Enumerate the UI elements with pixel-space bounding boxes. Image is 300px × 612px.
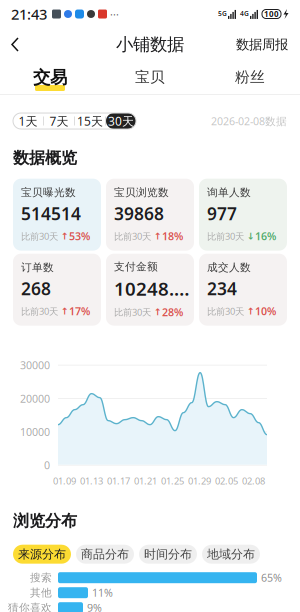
button[interactable]: 地域分布 [202, 545, 260, 564]
staticText: 21:43 [11, 4, 47, 24]
staticText: 比前30天 [21, 305, 58, 317]
button[interactable]: 商品分布 [76, 545, 134, 564]
staticText: 30天 [108, 113, 134, 129]
staticText: 成交人数 [207, 261, 251, 274]
button[interactable]: 粉丝 [200, 61, 300, 95]
staticText: 5G [218, 9, 227, 18]
staticText: 17% [69, 304, 90, 318]
staticText: 交易 [33, 67, 67, 88]
staticText: ↑ [151, 231, 162, 241]
staticText: 28% [162, 305, 183, 319]
staticText: 01.21 [134, 475, 157, 487]
staticText: 粉丝 [235, 68, 265, 86]
staticText: 20000 [20, 391, 50, 406]
staticText: 宝贝曝光数 [21, 186, 76, 199]
staticText: ↓ [244, 231, 255, 241]
staticText: 9% [87, 601, 102, 612]
staticText: 宝贝浏览数 [114, 186, 169, 199]
staticText: 01.17 [107, 475, 130, 487]
staticText: 时间分布 [144, 547, 192, 561]
button[interactable]: 数据周报 [224, 28, 300, 61]
button[interactable]: 时间分布 [139, 545, 197, 564]
staticText: 来源分布 [18, 547, 66, 561]
staticText: 01.09 [53, 475, 76, 487]
staticText: 01.25 [161, 475, 184, 487]
button[interactable]: 7天 [44, 113, 74, 129]
staticText: 比前30天 [21, 230, 58, 242]
staticText: 39868 [114, 202, 164, 225]
staticText: 7天 [49, 113, 68, 129]
button[interactable]: 来源分布 [13, 545, 71, 564]
staticText: 支付金额 [114, 260, 158, 273]
staticText: 02.08 [242, 475, 265, 487]
staticText: 514514 [21, 202, 81, 225]
staticText: 比前30天 [114, 306, 151, 318]
staticText: 其他 [30, 586, 52, 599]
staticText: ↑ [58, 306, 69, 316]
button[interactable]: 宝贝 [100, 61, 200, 95]
staticText: 比前30天 [207, 305, 244, 317]
staticText: 2026-02-08数据 [211, 114, 287, 128]
button[interactable]: Back [0, 29, 32, 60]
staticText: ··· [110, 7, 119, 21]
staticText: 订单数 [21, 261, 54, 274]
staticText: 10000 [20, 425, 50, 439]
staticText: ↑ [244, 306, 255, 316]
staticText: ↑ [58, 231, 69, 241]
staticText: 977 [207, 202, 237, 225]
staticText: 浏览分布 [13, 511, 77, 531]
staticText: 比前30天 [114, 230, 151, 242]
staticText: 猜你喜欢 [8, 601, 52, 612]
staticText: 11% [92, 586, 113, 600]
staticText: 比前30天 [207, 230, 244, 242]
staticText: 18% [162, 229, 183, 243]
staticText: 宝贝 [135, 68, 165, 86]
staticText: 4G [240, 9, 249, 18]
button[interactable]: 15天 [75, 113, 105, 129]
staticText: 30000 [20, 358, 50, 372]
staticText: 0 [44, 458, 50, 472]
staticText: 53% [69, 229, 90, 243]
staticText: 268 [21, 277, 51, 300]
staticText: 65% [261, 571, 282, 585]
staticText: 15天 [77, 113, 103, 129]
staticText: 商品分布 [81, 547, 129, 561]
staticText: 询单人数 [207, 186, 251, 199]
staticText: 10% [255, 304, 276, 318]
button[interactable]: 1天 [13, 113, 43, 129]
staticText: 数据概览 [13, 148, 77, 168]
staticText: ↑ [151, 307, 162, 317]
staticText: 100 [264, 9, 279, 19]
button[interactable]: 交易 [0, 61, 100, 95]
staticText: 搜索 [30, 571, 52, 584]
staticText: 地域分布 [207, 547, 255, 561]
button[interactable]: 30天 [106, 113, 136, 129]
staticText: 数据周报 [236, 36, 288, 53]
staticText: 小铺数据 [116, 34, 184, 55]
staticText: 02.05 [215, 475, 238, 487]
staticText: 01.29 [188, 475, 211, 487]
staticText: 16% [255, 229, 276, 243]
staticText: 234 [207, 277, 237, 300]
staticText: 01.13 [80, 475, 103, 487]
staticText: 10248.39 [114, 276, 192, 301]
staticText: 1天 [18, 113, 37, 129]
